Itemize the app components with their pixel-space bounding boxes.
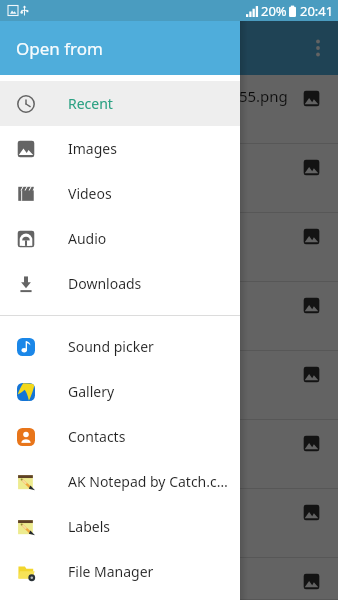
- staticText: Sound picker: [68, 337, 154, 356]
- staticText: Open from: [16, 37, 103, 60]
- button[interactable]: IMG_20171126_203055.png: [0, 75, 338, 144]
- button[interactable]: File Manager: [0, 549, 240, 594]
- staticText: Images: [68, 139, 117, 158]
- staticText: IMG_20171126_20297.png: [16, 569, 203, 589]
- staticText: 20%: [261, 2, 287, 20]
- staticText: IMG_20171126_20291.png: [16, 155, 203, 175]
- staticText: Downloads: [68, 274, 142, 293]
- button[interactable]: IMG_20171126_20293.png: [0, 282, 338, 351]
- button[interactable]: IMG_20171126_20297.png: [0, 558, 338, 600]
- button[interactable]: Labels: [0, 504, 240, 549]
- button[interactable]: AK Notepad by Catch.c…: [0, 459, 240, 504]
- staticText: IMG_20171126_203055.png: [93, 86, 288, 106]
- staticText: AK Notepad by Catch.c…: [68, 472, 228, 491]
- staticText: IMG_20171126_20292.png: [16, 224, 203, 244]
- button[interactable]: Images: [0, 126, 240, 171]
- button[interactable]: Videos: [0, 171, 240, 216]
- button[interactable]: Contacts: [0, 414, 240, 459]
- button[interactable]: IMG_20171126_20295.png: [0, 420, 338, 489]
- staticText: Audio: [68, 229, 107, 248]
- button[interactable]: IMG_20171126_20292.png: [0, 213, 338, 282]
- button[interactable]: More options: [301, 31, 335, 65]
- button[interactable]: IMG_20171126_20294.png: [0, 351, 338, 420]
- staticText: Contacts: [68, 427, 126, 446]
- button[interactable]: IMG_20171126_20291.png: [0, 144, 338, 213]
- staticText: IMG_20171126_20295.png: [16, 431, 203, 451]
- staticText: File Manager: [68, 562, 154, 581]
- button[interactable]: Recent: [0, 81, 240, 126]
- staticText: Labels: [68, 517, 111, 536]
- staticText: 20:41: [300, 2, 334, 20]
- staticText: Recent: [68, 94, 113, 113]
- staticText: Gallery: [68, 382, 115, 401]
- staticText: Videos: [68, 184, 112, 203]
- button[interactable]: Gallery: [0, 369, 240, 414]
- button[interactable]: Sound picker: [0, 324, 240, 369]
- button[interactable]: Downloads: [0, 261, 240, 306]
- button[interactable]: Audio: [0, 216, 240, 261]
- button[interactable]: IMG_20171126_20296.png: [0, 489, 338, 558]
